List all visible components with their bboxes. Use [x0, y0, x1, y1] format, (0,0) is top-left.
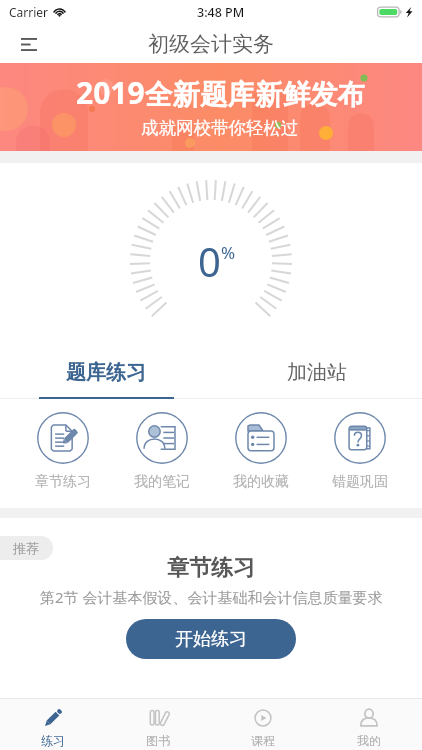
staticText: 章节练习 [167, 554, 255, 582]
button[interactable]: 课程 [210, 699, 316, 750]
button[interactable]: 错题巩固 [310, 412, 409, 500]
button[interactable]: 练习 [0, 699, 105, 750]
staticText: 我的笔记 [134, 473, 190, 491]
button[interactable]: 我的收藏 [211, 412, 310, 500]
button[interactable]: 开始练习 [126, 619, 296, 659]
staticText: 加油站 [287, 360, 347, 385]
staticText: 图书 [146, 733, 170, 748]
button[interactable]: 题库练习 [0, 346, 211, 399]
staticText: 题库练习 [66, 360, 146, 385]
staticText: 成就网校带你轻松过 [141, 117, 299, 139]
button[interactable]: 我的 [316, 699, 422, 750]
staticText: 错题巩固 [332, 473, 388, 491]
button[interactable]: 图书 [105, 699, 210, 750]
button[interactable]: 我的笔记 [112, 412, 211, 500]
staticText: 第2节 会计基本假设、会计基础和会计信息质量要求 [40, 587, 383, 607]
staticText: 推荐 [13, 540, 39, 556]
staticText: 3:48 PM [197, 4, 245, 21]
staticText: 我的 [357, 733, 381, 748]
staticText: 章节练习 [35, 473, 91, 491]
staticText: 初级会计实务 [148, 31, 274, 57]
staticText: % [221, 241, 236, 264]
staticText: 2019 [76, 72, 145, 113]
button[interactable]: 章节练习 [13, 412, 112, 500]
button[interactable]: 推荐 [0, 536, 53, 560]
staticText: Carrier [9, 4, 49, 20]
staticText: 0 [198, 234, 221, 288]
button[interactable]: 加油站 [211, 346, 422, 399]
staticText: 全新题库新鲜发布 [145, 78, 365, 113]
staticText: 开始练习 [175, 628, 247, 651]
staticText: 课程 [251, 733, 275, 748]
staticText: 练习 [41, 733, 65, 748]
staticText: 我的收藏 [233, 473, 289, 491]
button[interactable]: Menu [12, 27, 46, 61]
